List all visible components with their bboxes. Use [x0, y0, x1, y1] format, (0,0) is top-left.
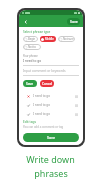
button[interactable]: Not sure — [58, 36, 75, 42]
button[interactable]: Save — [23, 80, 37, 87]
staticText: Select phrase type — [23, 30, 51, 34]
other: Reorder — [74, 112, 78, 116]
staticText: I need to go — [33, 94, 50, 98]
button[interactable]: Save — [23, 133, 79, 142]
button[interactable]: I need to go — [23, 109, 79, 118]
button[interactable]: Cancel — [40, 80, 54, 87]
button[interactable]: I need to go — [23, 91, 79, 100]
staticText: phrases — [34, 167, 68, 179]
staticText: You can add a comment or tag — [23, 125, 64, 129]
button[interactable]: Back — [22, 18, 29, 25]
staticText: Save — [70, 19, 78, 24]
staticText: Your phrase — [23, 54, 38, 58]
staticText: I need to go — [23, 59, 42, 63]
staticText: Edit tags — [23, 120, 36, 124]
staticText: Middle — [45, 37, 54, 41]
button[interactable]: Not to say — [23, 44, 41, 50]
staticText: Save — [47, 135, 55, 140]
button[interactable]: Begin — [23, 36, 38, 42]
staticText: Cancel — [42, 82, 53, 86]
staticText: Save — [26, 82, 34, 86]
other: Reorder — [74, 94, 78, 98]
staticText: Write down — [26, 153, 75, 165]
staticText: I need to go — [33, 103, 50, 107]
staticText: Not to say — [28, 45, 40, 49]
staticText: Begin — [28, 37, 36, 41]
staticText: Input comment or keywords — [23, 69, 66, 73]
staticText: Not sure — [63, 37, 74, 41]
other: Reorder — [74, 103, 78, 107]
staticText: I need to go — [33, 112, 50, 116]
button[interactable]: Save — [67, 18, 80, 25]
button[interactable]: I need to go — [23, 100, 79, 109]
button[interactable]: Middle — [40, 36, 56, 42]
